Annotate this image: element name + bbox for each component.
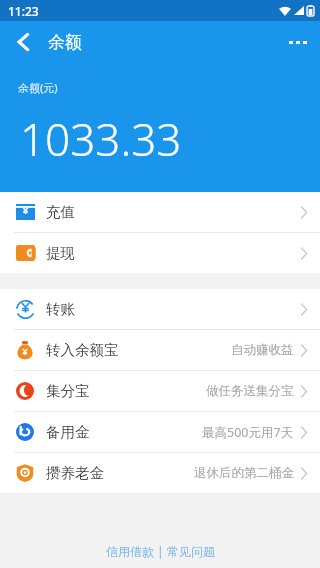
staticText: 攒养老金 [46, 464, 104, 482]
staticText: 余额(元) [18, 80, 58, 95]
button[interactable]: 提现 [0, 233, 320, 273]
staticText: 充值 [46, 203, 75, 221]
button[interactable]: 常见问题 [167, 544, 215, 559]
staticText: 提现 [46, 244, 75, 262]
button[interactable]: Back [0, 21, 46, 63]
staticText: 信用借款 [106, 544, 154, 559]
button[interactable]: 充值 [0, 192, 320, 232]
staticText: 转入余额宝 [46, 341, 119, 359]
staticText: 常见问题 [167, 544, 215, 559]
staticText: | [154, 543, 167, 559]
button[interactable]: 集分宝 [0, 371, 320, 411]
button[interactable]: 转账 [0, 289, 320, 329]
button[interactable]: 备用金 [0, 412, 320, 452]
button[interactable]: 攒养老金 [0, 453, 320, 493]
staticText: 集分宝 [46, 382, 90, 400]
staticText: 转账 [46, 300, 75, 318]
staticText: 备用金 [46, 423, 90, 441]
staticText: 11:23 [8, 3, 39, 19]
staticText: 余额 [48, 32, 82, 53]
staticText: 退休后的第二桶金 [194, 465, 294, 481]
button[interactable]: 信用借款 [106, 544, 154, 559]
staticText: 1033.33 [20, 109, 182, 169]
staticText: 自动赚收益 [231, 342, 294, 358]
staticText: 做任务送集分宝 [206, 383, 294, 399]
button[interactable]: More options [276, 21, 320, 63]
staticText: 最高500元用7天 [202, 424, 294, 441]
button[interactable]: 转入余额宝 [0, 330, 320, 370]
